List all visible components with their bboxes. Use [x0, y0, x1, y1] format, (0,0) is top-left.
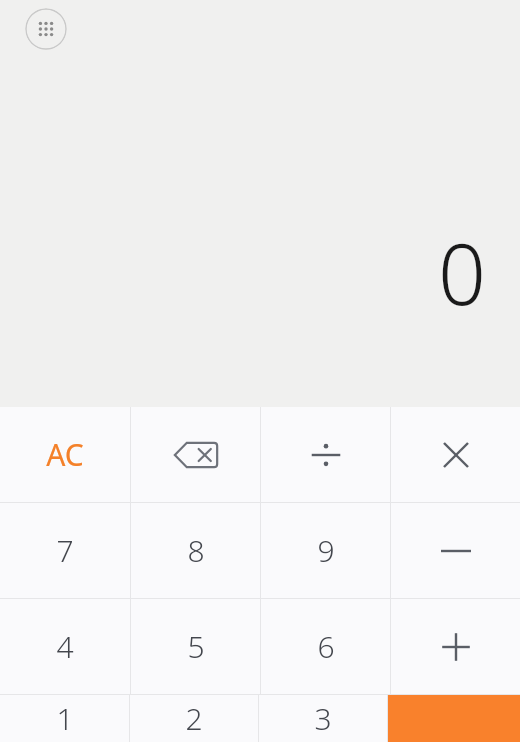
button[interactable]: 3	[259, 695, 387, 742]
button[interactable]: Multiply	[391, 407, 520, 502]
button[interactable]: Minus	[391, 503, 520, 598]
staticText: 3	[314, 698, 332, 739]
staticText: 6	[317, 626, 335, 667]
staticText: 1	[56, 698, 74, 739]
button[interactable]: 4	[0, 599, 130, 694]
button[interactable]: Backspace	[131, 407, 260, 502]
staticText: AC	[46, 434, 84, 475]
button[interactable]: 1	[0, 695, 129, 742]
button[interactable]: 5	[131, 599, 260, 694]
button[interactable]: 7	[0, 503, 130, 598]
button[interactable]: 9	[261, 503, 390, 598]
staticText: 8	[187, 530, 205, 571]
staticText: 7	[56, 530, 74, 571]
button[interactable]: Divide	[261, 407, 390, 502]
button[interactable]: 2	[130, 695, 258, 742]
staticText: 2	[185, 698, 203, 739]
staticText: 5	[187, 626, 205, 667]
button[interactable]: Keypad layout	[25, 8, 67, 50]
button[interactable]: 8	[131, 503, 260, 598]
button[interactable]: AC	[0, 407, 130, 502]
button[interactable]: Plus	[391, 599, 520, 694]
button[interactable]: 6	[261, 599, 390, 694]
staticText: 9	[317, 530, 335, 571]
staticText: 0	[438, 215, 486, 329]
staticText: 4	[56, 626, 74, 667]
